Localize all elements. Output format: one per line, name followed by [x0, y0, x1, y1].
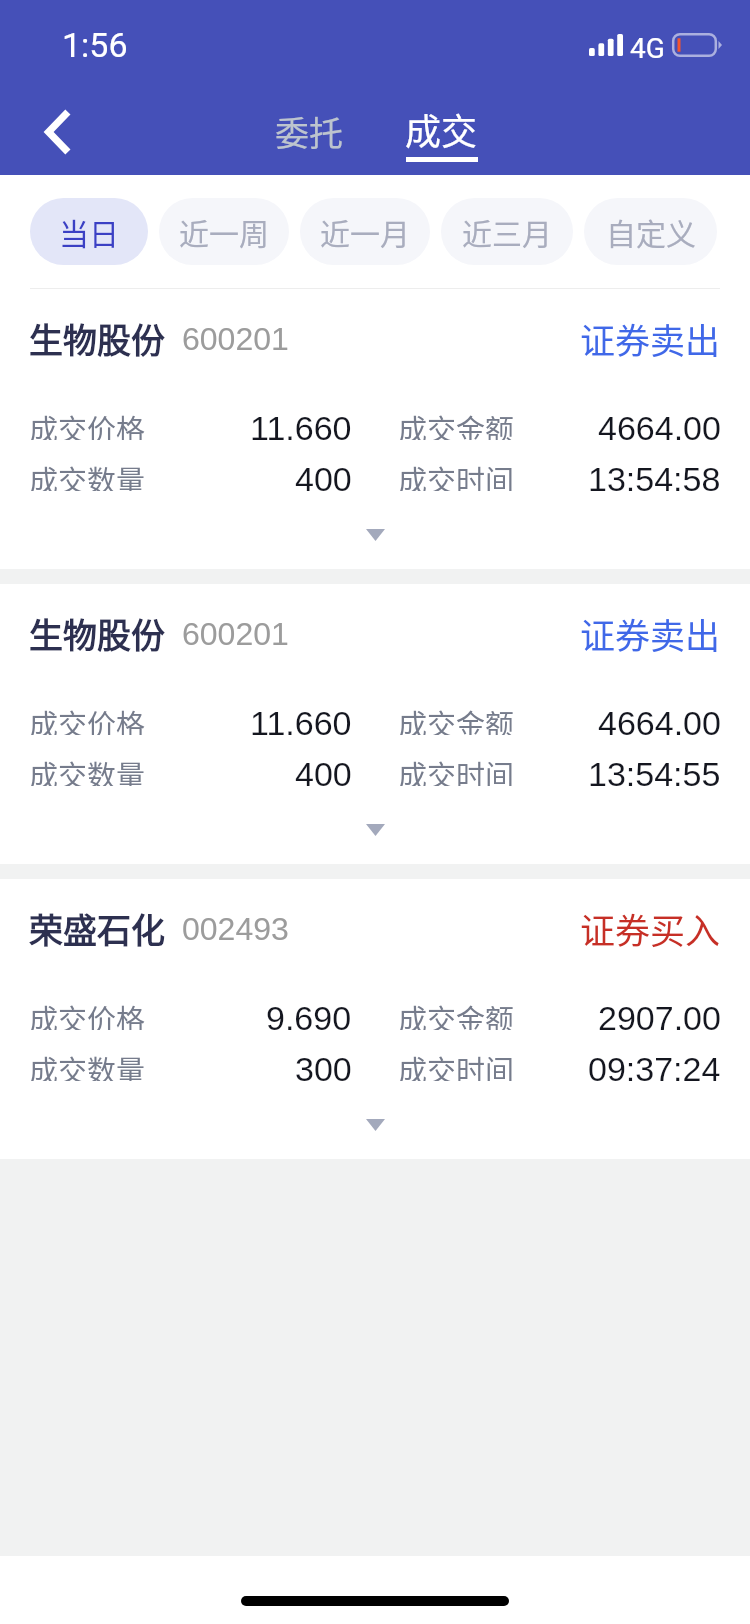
staticText: 委托	[275, 107, 343, 156]
staticText: 成交价格	[29, 702, 146, 735]
button[interactable]: 成交	[389, 101, 494, 162]
button[interactable]: Back	[0, 88, 110, 175]
staticText: 300	[295, 1050, 352, 1083]
staticText: 证券买入	[580, 903, 721, 954]
button[interactable]: 生物股份	[0, 584, 750, 864]
staticText: 自定义	[606, 210, 696, 253]
staticText: 09:37:24	[588, 1050, 721, 1083]
button[interactable]: 生物股份	[0, 289, 750, 569]
staticText: 生物股份	[29, 314, 165, 363]
staticText: 生物股份	[29, 609, 165, 658]
staticText: 成交	[405, 103, 478, 155]
staticText: 成交时间	[398, 1048, 515, 1081]
staticText: 成交时间	[398, 458, 515, 491]
button[interactable]: 自定义	[584, 198, 717, 265]
staticText: 成交价格	[29, 997, 146, 1030]
staticText: 11.660	[250, 409, 352, 442]
button[interactable]: 近一月	[300, 198, 430, 265]
staticText: 4G	[630, 32, 665, 65]
staticText: 近三月	[462, 210, 552, 253]
staticText: 成交金额	[398, 407, 515, 440]
staticText: 002493	[182, 911, 289, 947]
staticText: 成交金额	[398, 702, 515, 735]
staticText: 成交金额	[398, 997, 515, 1030]
staticText: 400	[295, 755, 352, 788]
staticText: 证券卖出	[580, 608, 721, 659]
staticText: 4664.00	[598, 409, 721, 442]
staticText: 荣盛石化	[29, 904, 165, 953]
staticText: 近一月	[320, 210, 410, 253]
staticText: 当日	[59, 210, 119, 253]
staticText: 600201	[182, 321, 289, 357]
staticText: 近一周	[179, 210, 269, 253]
staticText: 11.660	[250, 704, 352, 737]
button[interactable]: 近三月	[441, 198, 573, 265]
button[interactable]: 当日	[30, 198, 148, 265]
staticText: 成交数量	[29, 458, 146, 491]
staticText: 成交时间	[398, 753, 515, 786]
staticText: 400	[295, 460, 352, 493]
button[interactable]: 委托	[259, 97, 359, 166]
staticText: 9.690	[266, 999, 352, 1032]
staticText: 1:56	[62, 25, 128, 65]
staticText: 13:54:55	[588, 755, 721, 788]
staticText: 成交数量	[29, 753, 146, 786]
staticText: 13:54:58	[588, 460, 721, 493]
staticText: 2907.00	[598, 999, 721, 1032]
button[interactable]: 近一周	[159, 198, 289, 265]
staticText: 成交数量	[29, 1048, 146, 1081]
staticText: 证券卖出	[580, 313, 721, 364]
button[interactable]: 荣盛石化	[0, 879, 750, 1159]
staticText: 4664.00	[598, 704, 721, 737]
staticText: 成交价格	[29, 407, 146, 440]
staticText: 600201	[182, 616, 289, 652]
